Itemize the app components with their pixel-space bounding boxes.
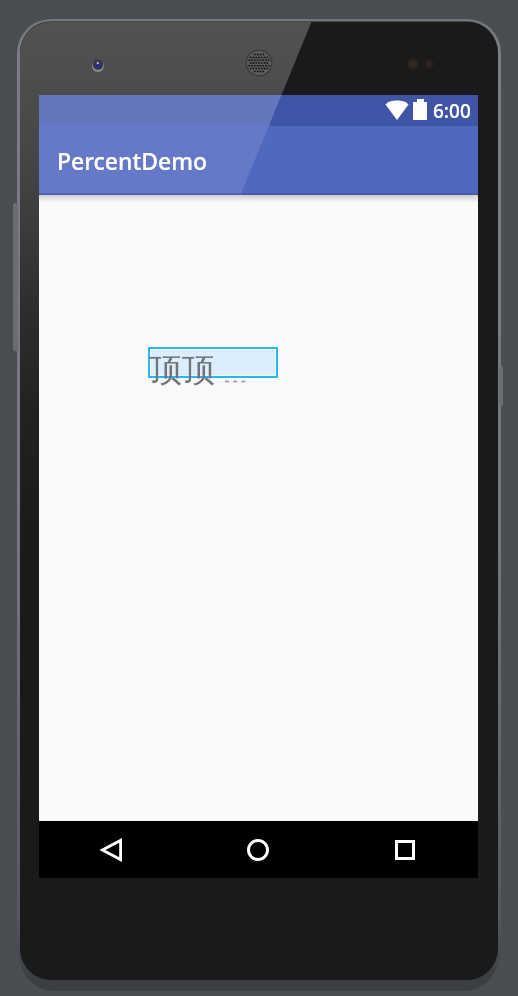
staticText: 6:00: [433, 98, 471, 124]
button[interactable]: [151, 350, 275, 375]
button[interactable]: Back: [87, 826, 135, 874]
button[interactable]: Home: [234, 826, 282, 874]
button[interactable]: Recents: [381, 826, 429, 874]
staticText: PercentDemo: [57, 145, 208, 176]
staticText: 顶顶: [149, 349, 215, 391]
